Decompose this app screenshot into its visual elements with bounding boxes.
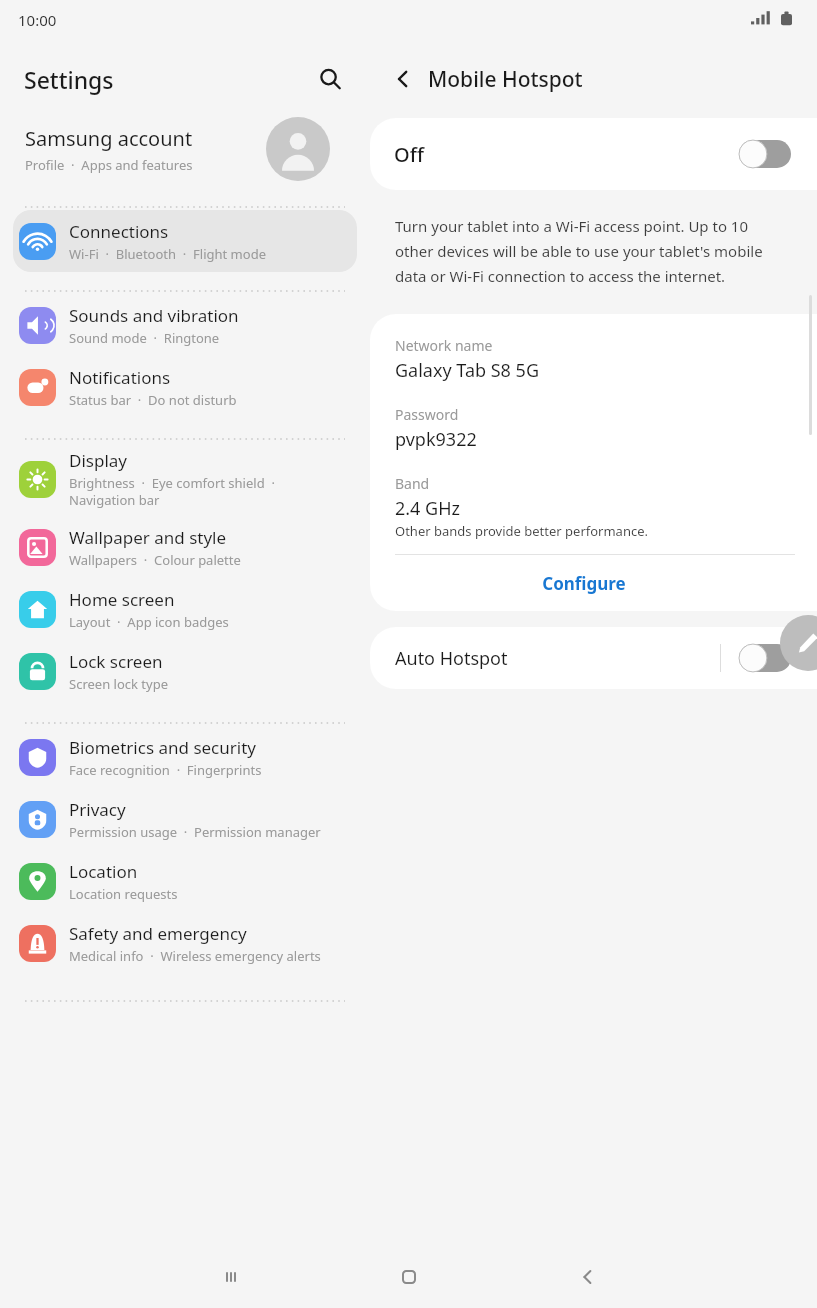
- button[interactable]: Notifications: [13, 356, 357, 418]
- button[interactable]: Biometrics and security: [13, 726, 357, 788]
- staticText: Settings: [24, 64, 114, 95]
- staticText: Location: [69, 860, 138, 883]
- staticText: Network name: [395, 336, 493, 355]
- staticText: Screen lock type: [69, 675, 168, 693]
- staticText: Wallpapers · Colour palette: [69, 551, 241, 569]
- staticText: Configure: [542, 572, 626, 595]
- button[interactable]: Wallpaper and style: [13, 516, 357, 578]
- staticText: Password: [395, 405, 459, 424]
- staticText: Lock screen: [69, 650, 163, 673]
- staticText: Layout · App icon badges: [69, 613, 229, 631]
- staticText: Wallpaper and style: [69, 526, 227, 549]
- button[interactable]: Sounds and vibration: [13, 294, 357, 356]
- button[interactable]: Safety and emergency: [13, 912, 357, 974]
- staticText: Permission usage · Permission manager: [69, 823, 321, 841]
- button[interactable]: Home screen: [13, 578, 357, 640]
- button[interactable]: Recents: [205, 1251, 257, 1303]
- button[interactable]: Lock screen: [13, 640, 357, 702]
- button[interactable]: Edit: [780, 615, 817, 671]
- staticText: Auto Hotspot: [395, 646, 508, 671]
- staticText: Notifications: [69, 366, 171, 389]
- button[interactable]: Off: [370, 118, 817, 190]
- staticText: Turn your tablet into a Wi-Fi access poi…: [395, 216, 789, 286]
- staticText: Off: [394, 141, 424, 168]
- button[interactable]: Display: [13, 442, 357, 516]
- staticText: Connections: [69, 220, 169, 243]
- button[interactable]: Back: [562, 1251, 614, 1303]
- staticText: 10:00: [18, 10, 57, 30]
- staticText: Profile · Apps and features: [25, 156, 193, 174]
- staticText: Biometrics and security: [69, 736, 256, 759]
- staticText: Display: [69, 449, 127, 472]
- staticText: Sound mode · Ringtone: [69, 329, 220, 347]
- button[interactable]: Home: [383, 1251, 435, 1303]
- staticText: Face recognition · Fingerprints: [69, 761, 262, 779]
- staticText: Privacy: [69, 798, 126, 821]
- button[interactable]: Privacy: [13, 788, 357, 850]
- staticText: Mobile Hotspot: [428, 65, 583, 94]
- staticText: Location requests: [69, 885, 178, 903]
- button[interactable]: Connections: [13, 210, 357, 272]
- button[interactable]: Samsung account: [0, 106, 370, 192]
- button[interactable]: Search: [308, 57, 352, 101]
- button[interactable]: Configure: [395, 555, 795, 611]
- button[interactable]: Auto Hotspot: [370, 627, 817, 689]
- staticText: Safety and emergency: [69, 922, 247, 945]
- staticText: Wi-Fi · Bluetooth · Flight mode: [69, 245, 266, 263]
- staticText: Brightness · Eye comfort shield · Naviga…: [69, 474, 275, 509]
- staticText: Home screen: [69, 588, 175, 611]
- staticText: Galaxy Tab S8 5G: [395, 358, 539, 383]
- staticText: Band: [395, 474, 430, 493]
- staticText: 2.4 GHz: [395, 496, 460, 521]
- staticText: Samsung account: [25, 125, 193, 152]
- button[interactable]: Location: [13, 850, 357, 912]
- staticText: Status bar · Do not disturb: [69, 391, 237, 409]
- staticText: Medical info · Wireless emergency alerts: [69, 947, 321, 965]
- staticText: Other bands provide better performance.: [395, 522, 648, 540]
- staticText: Sounds and vibration: [69, 304, 239, 327]
- staticText: pvpk9322: [395, 427, 477, 452]
- button[interactable]: Back: [382, 58, 424, 100]
